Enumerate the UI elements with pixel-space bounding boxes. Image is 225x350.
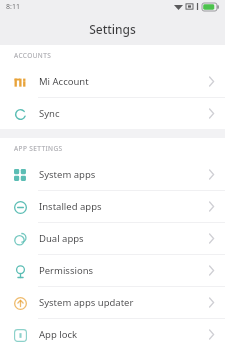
- button[interactable]: App lock: [0, 319, 225, 350]
- staticText: System apps: [39, 168, 96, 181]
- button[interactable]: Sync: [0, 98, 225, 129]
- staticText: Dual apps: [39, 232, 84, 245]
- button[interactable]: System apps: [0, 159, 225, 190]
- button[interactable]: Dual apps: [0, 223, 225, 254]
- staticText: Sync: [39, 107, 60, 120]
- staticText: APP SETTINGS: [14, 144, 63, 153]
- staticText: System apps updater: [39, 296, 134, 309]
- staticText: ACCOUNTS: [14, 51, 52, 60]
- staticText: Settings: [89, 21, 136, 37]
- staticText: Mi Account: [39, 75, 89, 88]
- button[interactable]: Permissions: [0, 255, 225, 286]
- staticText: Permissions: [39, 264, 94, 277]
- staticText: App lock: [39, 328, 78, 341]
- staticText: Installed apps: [39, 200, 102, 213]
- staticText: 8:11: [6, 2, 20, 12]
- button[interactable]: Installed apps: [0, 191, 225, 222]
- button[interactable]: System apps updater: [0, 287, 225, 318]
- button[interactable]: Mi Account: [0, 66, 225, 97]
